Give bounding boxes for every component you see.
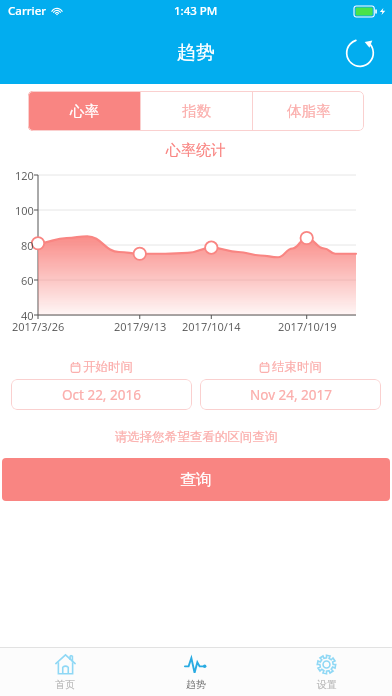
button[interactable]: 体脂率 xyxy=(253,91,364,131)
staticText: 请选择您希望查看的区间查询 xyxy=(0,429,392,445)
staticText: 40 xyxy=(21,308,34,323)
staticText: Oct 22, 2016 xyxy=(62,386,141,404)
button[interactable]: 结束时间 xyxy=(200,359,381,410)
staticText: 查询 xyxy=(180,470,212,490)
staticText: 80 xyxy=(21,238,34,253)
button[interactable]: 首页 xyxy=(0,648,130,696)
staticText: 指数 xyxy=(182,102,211,120)
staticText: 设置 xyxy=(317,678,337,691)
staticText: 首页 xyxy=(55,678,75,691)
button[interactable]: 趋势 xyxy=(130,648,261,696)
button[interactable]: 设置 xyxy=(261,648,392,696)
staticText: 2017/3/26 xyxy=(12,319,65,334)
staticText: 100 xyxy=(15,203,34,218)
staticText: 心率统计 xyxy=(0,141,392,160)
staticText: 趋势 xyxy=(186,678,206,691)
staticText: 2017/10/19 xyxy=(278,319,337,334)
staticText: Nov 24, 2017 xyxy=(250,386,332,404)
button[interactable]: 开始时间 xyxy=(11,359,192,410)
button[interactable]: Refresh xyxy=(340,33,380,73)
staticText: 趋势 xyxy=(177,41,215,65)
staticText: 结束时间 xyxy=(272,359,322,375)
staticText: 开始时间 xyxy=(83,359,133,375)
staticText: 体脂率 xyxy=(287,102,331,120)
staticText: 2017/10/14 xyxy=(182,319,241,334)
button[interactable]: 心率 xyxy=(28,91,140,131)
button[interactable]: 查询 xyxy=(2,458,390,501)
staticText: 60 xyxy=(21,273,34,288)
button[interactable]: 指数 xyxy=(141,91,252,131)
staticText: 1:43 PM xyxy=(174,3,218,19)
staticText: 心率 xyxy=(70,102,99,120)
staticText: 2017/9/13 xyxy=(114,319,167,334)
staticText: 120 xyxy=(15,168,34,183)
staticText: Carrier xyxy=(8,3,47,19)
